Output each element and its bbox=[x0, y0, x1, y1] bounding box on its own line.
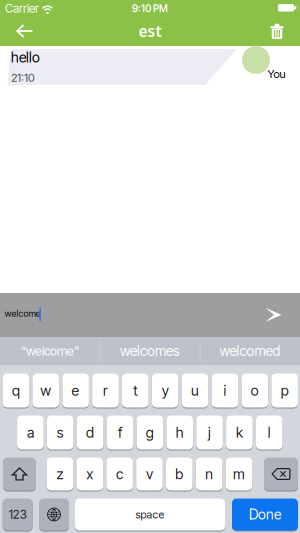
button[interactable]: “welcome” bbox=[0, 337, 99, 365]
staticText: est bbox=[138, 20, 161, 42]
staticText: g bbox=[146, 424, 154, 441]
button[interactable]: s bbox=[47, 415, 74, 450]
button[interactable]: u bbox=[182, 373, 208, 408]
button[interactable]: h bbox=[166, 415, 193, 450]
staticText: k bbox=[236, 424, 243, 441]
staticText: f bbox=[118, 424, 122, 441]
button[interactable]: d bbox=[77, 415, 103, 450]
staticText: 9:10 PM bbox=[132, 2, 168, 15]
staticText: l bbox=[268, 424, 271, 441]
button[interactable] bbox=[3, 457, 36, 491]
button[interactable]: e bbox=[62, 373, 89, 408]
staticText: Carrier bbox=[5, 1, 39, 16]
staticText: j bbox=[208, 424, 211, 441]
button[interactable]: space bbox=[75, 498, 225, 531]
staticText: m bbox=[233, 465, 245, 483]
button[interactable]: k bbox=[226, 415, 253, 450]
button[interactable]: Done bbox=[232, 498, 298, 531]
button[interactable]: b bbox=[166, 457, 193, 491]
staticText: n bbox=[205, 465, 213, 483]
staticText: 123 bbox=[9, 507, 27, 522]
button[interactable] bbox=[39, 498, 69, 531]
button[interactable]: f bbox=[107, 415, 133, 450]
button[interactable]: q bbox=[3, 373, 29, 408]
button[interactable] bbox=[0, 293, 300, 337]
staticText: o bbox=[251, 382, 259, 399]
button[interactable] bbox=[264, 457, 298, 491]
staticText: welcomed bbox=[219, 343, 280, 359]
button[interactable]: a bbox=[17, 415, 44, 450]
button[interactable]: r bbox=[92, 373, 119, 408]
staticText: i bbox=[223, 382, 226, 399]
button[interactable]: welcomes bbox=[100, 337, 199, 365]
button[interactable]: z bbox=[47, 457, 73, 491]
staticText: w bbox=[40, 382, 51, 399]
staticText: q bbox=[12, 382, 20, 399]
staticText: d bbox=[86, 424, 94, 441]
staticText: a bbox=[27, 424, 34, 441]
button[interactable]: t bbox=[122, 373, 149, 408]
staticText: z bbox=[56, 465, 63, 483]
button[interactable]: x bbox=[76, 457, 103, 491]
staticText: v bbox=[146, 465, 153, 483]
staticText: space bbox=[135, 508, 164, 521]
staticText: welcomes bbox=[120, 343, 180, 359]
button[interactable]: v bbox=[136, 457, 163, 491]
staticText: hello bbox=[11, 49, 40, 66]
staticText: c bbox=[116, 465, 123, 483]
button[interactable]: welcomed bbox=[200, 337, 299, 365]
button[interactable]: p bbox=[271, 373, 298, 408]
staticText: 21:10 bbox=[11, 70, 35, 84]
staticText: e bbox=[72, 382, 80, 399]
button[interactable]: c bbox=[106, 457, 133, 491]
staticText: b bbox=[175, 465, 183, 483]
button[interactable] bbox=[265, 19, 289, 43]
staticText: welcome bbox=[4, 308, 40, 319]
button[interactable]: 123 bbox=[3, 498, 33, 531]
staticText: You bbox=[267, 67, 285, 81]
staticText: h bbox=[176, 424, 184, 441]
staticText: “welcome” bbox=[21, 343, 79, 359]
button[interactable]: m bbox=[226, 457, 252, 491]
button[interactable] bbox=[263, 306, 283, 323]
button[interactable]: l bbox=[256, 415, 283, 450]
button[interactable]: j bbox=[196, 415, 223, 450]
staticText: s bbox=[57, 424, 64, 441]
button[interactable]: g bbox=[136, 415, 163, 450]
button[interactable]: w bbox=[32, 373, 59, 408]
staticText: x bbox=[86, 465, 93, 483]
button[interactable]: y bbox=[152, 373, 178, 408]
staticText: p bbox=[281, 382, 289, 399]
staticText: t bbox=[133, 382, 137, 399]
staticText: Done bbox=[249, 506, 281, 523]
button[interactable]: o bbox=[241, 373, 268, 408]
staticText: r bbox=[103, 382, 108, 399]
button[interactable] bbox=[7, 18, 41, 44]
button[interactable]: n bbox=[196, 457, 222, 491]
button[interactable]: i bbox=[212, 373, 238, 408]
staticText: u bbox=[191, 382, 199, 399]
staticText: y bbox=[162, 382, 169, 399]
